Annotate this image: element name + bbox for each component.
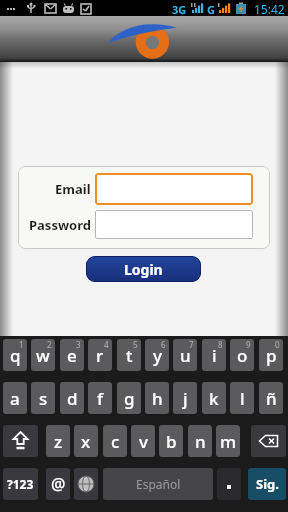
- staticText: 6: [161, 339, 166, 350]
- button[interactable]: p: [259, 339, 283, 371]
- button[interactable]: Login: [86, 256, 201, 282]
- staticText: e: [67, 344, 77, 367]
- button[interactable]: c: [103, 425, 127, 457]
- staticText: y: [153, 344, 162, 367]
- staticText: 1: [19, 339, 24, 350]
- staticText: G: [207, 2, 215, 15]
- staticText: r: [96, 344, 104, 367]
- button[interactable]: @: [46, 468, 70, 500]
- staticText: h: [152, 387, 163, 410]
- staticText: 9: [246, 339, 251, 350]
- staticText: o: [237, 344, 248, 367]
- staticText: Español: [136, 476, 181, 492]
- button[interactable]: d: [60, 382, 84, 414]
- button[interactable]: [217, 468, 241, 500]
- staticText: l: [240, 387, 245, 410]
- staticText: i: [212, 344, 217, 367]
- button[interactable]: ñ: [259, 382, 283, 414]
- button[interactable]: a: [3, 382, 27, 414]
- staticText: j: [183, 387, 188, 410]
- staticText: v: [139, 430, 148, 453]
- staticText: u: [180, 344, 191, 367]
- staticText: f: [97, 387, 104, 410]
- button[interactable]: e: [60, 339, 84, 371]
- staticText: z: [54, 430, 63, 453]
- button[interactable]: i: [202, 339, 226, 371]
- staticText: @: [51, 473, 66, 495]
- staticText: 3: [76, 339, 81, 350]
- button[interactable]: h: [145, 382, 169, 414]
- staticText: d: [67, 387, 78, 410]
- button[interactable]: [95, 210, 253, 239]
- staticText: Login: [124, 260, 163, 279]
- button[interactable]: g: [117, 382, 141, 414]
- button[interactable]: b: [159, 425, 183, 457]
- staticText: ñ: [266, 387, 277, 410]
- button[interactable]: [95, 173, 253, 205]
- staticText: 0: [275, 339, 280, 350]
- staticText: 2: [47, 339, 52, 350]
- button[interactable]: s: [31, 382, 55, 414]
- button[interactable]: u: [173, 339, 197, 371]
- button[interactable]: l: [230, 382, 254, 414]
- staticText: a: [10, 387, 20, 410]
- button[interactable]: k: [202, 382, 226, 414]
- button[interactable]: x: [74, 425, 98, 457]
- staticText: x: [81, 430, 91, 453]
- staticText: n: [195, 430, 206, 453]
- staticText: k: [209, 387, 219, 410]
- staticText: p: [266, 344, 277, 367]
- staticText: 8: [218, 339, 223, 350]
- button[interactable]: [3, 425, 38, 457]
- staticText: Email: [55, 180, 91, 198]
- button[interactable]: m: [216, 425, 240, 457]
- staticText: w: [36, 344, 50, 367]
- button[interactable]: f: [88, 382, 112, 414]
- button[interactable]: z: [46, 425, 70, 457]
- staticText: 5: [133, 339, 138, 350]
- staticText: Password: [29, 216, 91, 234]
- button[interactable]: Español: [103, 468, 213, 500]
- staticText: g: [124, 387, 135, 410]
- staticText: ?123: [7, 476, 34, 492]
- staticText: 7: [189, 339, 194, 350]
- staticText: s: [39, 387, 48, 410]
- staticText: 4: [104, 339, 109, 350]
- staticText: m: [220, 430, 237, 453]
- button[interactable]: w: [31, 339, 55, 371]
- button[interactable]: y: [145, 339, 169, 371]
- button[interactable]: r: [88, 339, 112, 371]
- button[interactable]: n: [188, 425, 212, 457]
- button[interactable]: Sig.: [248, 468, 286, 500]
- staticText: 3G: [172, 2, 187, 15]
- staticText: q: [10, 344, 21, 367]
- staticText: b: [166, 430, 177, 453]
- staticText: 15:42: [254, 1, 285, 15]
- staticText: c: [111, 430, 120, 453]
- staticText: t: [126, 344, 133, 367]
- button[interactable]: j: [173, 382, 197, 414]
- button[interactable]: [251, 425, 286, 457]
- button[interactable]: v: [131, 425, 155, 457]
- staticText: Sig.: [256, 475, 279, 493]
- button[interactable]: [74, 468, 98, 500]
- button[interactable]: t: [117, 339, 141, 371]
- button[interactable]: q: [3, 339, 27, 371]
- button[interactable]: ?123: [3, 468, 38, 500]
- button[interactable]: o: [230, 339, 254, 371]
